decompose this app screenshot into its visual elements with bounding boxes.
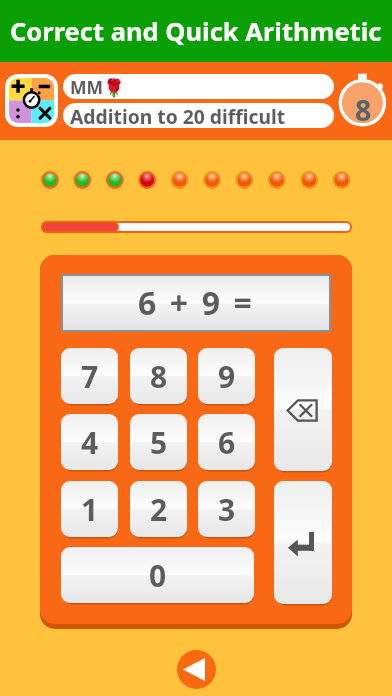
- staticText: 5: [150, 422, 168, 463]
- staticText: 9: [218, 356, 236, 397]
- button[interactable]: Enter: [274, 481, 332, 604]
- staticText: 3: [218, 489, 236, 530]
- button[interactable]: 8: [130, 348, 187, 404]
- button[interactable]: 6: [198, 414, 255, 470]
- button[interactable]: 5: [130, 414, 187, 470]
- button[interactable]: 2: [130, 481, 187, 537]
- staticText: MM🌹: [70, 75, 125, 99]
- staticText: 6: [218, 422, 236, 463]
- button[interactable]: 7: [61, 348, 118, 404]
- button[interactable]: Backspace: [274, 348, 332, 471]
- button[interactable]: 1: [61, 481, 118, 537]
- staticText: 7: [81, 356, 99, 397]
- staticText: 2: [150, 489, 168, 530]
- button[interactable]: Back: [177, 650, 216, 689]
- button[interactable]: 0: [61, 547, 254, 603]
- staticText: Addition to 20 difficult: [70, 103, 286, 128]
- staticText: 8: [355, 91, 372, 130]
- button[interactable]: 3: [198, 481, 255, 537]
- staticText: 4: [81, 422, 99, 463]
- other: Arithmetic app icon: [9, 78, 54, 123]
- other: Timer: [335, 72, 390, 127]
- staticText: 8: [150, 356, 168, 397]
- staticText: 1: [81, 489, 99, 530]
- staticText: 0: [149, 555, 167, 596]
- button[interactable]: 9: [198, 348, 255, 404]
- staticText: 6 + 9 =: [138, 281, 255, 325]
- staticText: Correct and Quick Arithmetic: [10, 14, 382, 49]
- button[interactable]: 4: [61, 414, 118, 470]
